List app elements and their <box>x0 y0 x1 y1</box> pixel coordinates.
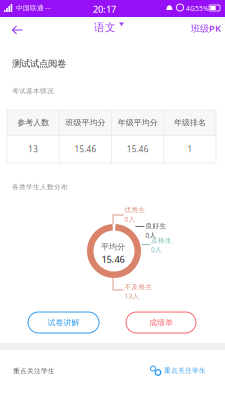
button[interactable]: 重点关注学生 <box>150 365 206 376</box>
staticText: 参考人数 <box>17 118 49 127</box>
staticText: 重点关注学生 <box>13 367 55 375</box>
staticText: 0人 <box>124 215 135 224</box>
staticText: 语文 <box>94 21 116 34</box>
staticText: 测试试点阅卷 <box>12 58 66 69</box>
staticText: 优秀生 <box>124 206 145 214</box>
staticText: 中国联通 <box>16 4 44 12</box>
staticText: 成绩单 <box>149 318 173 327</box>
staticText: 及格生 <box>151 236 172 245</box>
staticText: 班级PK <box>191 22 221 34</box>
staticText: 年级平均分 <box>118 118 158 127</box>
button[interactable]: Back <box>6 18 30 42</box>
staticText: 1 <box>187 144 192 154</box>
button[interactable]: 班级PK <box>191 22 221 34</box>
staticText: 试卷讲解 <box>47 318 79 327</box>
staticText: 15.46 <box>74 144 96 154</box>
staticText: 良好生 <box>145 222 166 230</box>
staticText: 平均分 <box>101 242 125 252</box>
staticText: 不及格生 <box>124 283 152 291</box>
staticText: ··· <box>45 4 51 13</box>
staticText: 0人 <box>151 245 162 254</box>
staticText: 4G <box>186 4 195 13</box>
staticText: 年级排名 <box>174 118 206 127</box>
staticText: 13人 <box>124 292 139 301</box>
button[interactable]: 试卷讲解 <box>28 312 99 333</box>
button[interactable]: 语文 <box>94 21 124 34</box>
staticText: 13 <box>28 144 38 154</box>
button[interactable]: 成绩单 <box>126 312 196 333</box>
staticText: 考试基本情况 <box>12 87 54 95</box>
staticText: 15.46 <box>127 144 149 154</box>
staticText: 0人 <box>145 231 156 240</box>
staticText: 重点关注学生 <box>164 366 206 375</box>
staticText: 55% <box>195 4 209 13</box>
staticText: 班级平均分 <box>65 118 105 127</box>
staticText: 15.46 <box>101 253 124 265</box>
staticText: 各类学生人数分布 <box>12 183 68 191</box>
staticText: 20:17 <box>93 3 116 15</box>
